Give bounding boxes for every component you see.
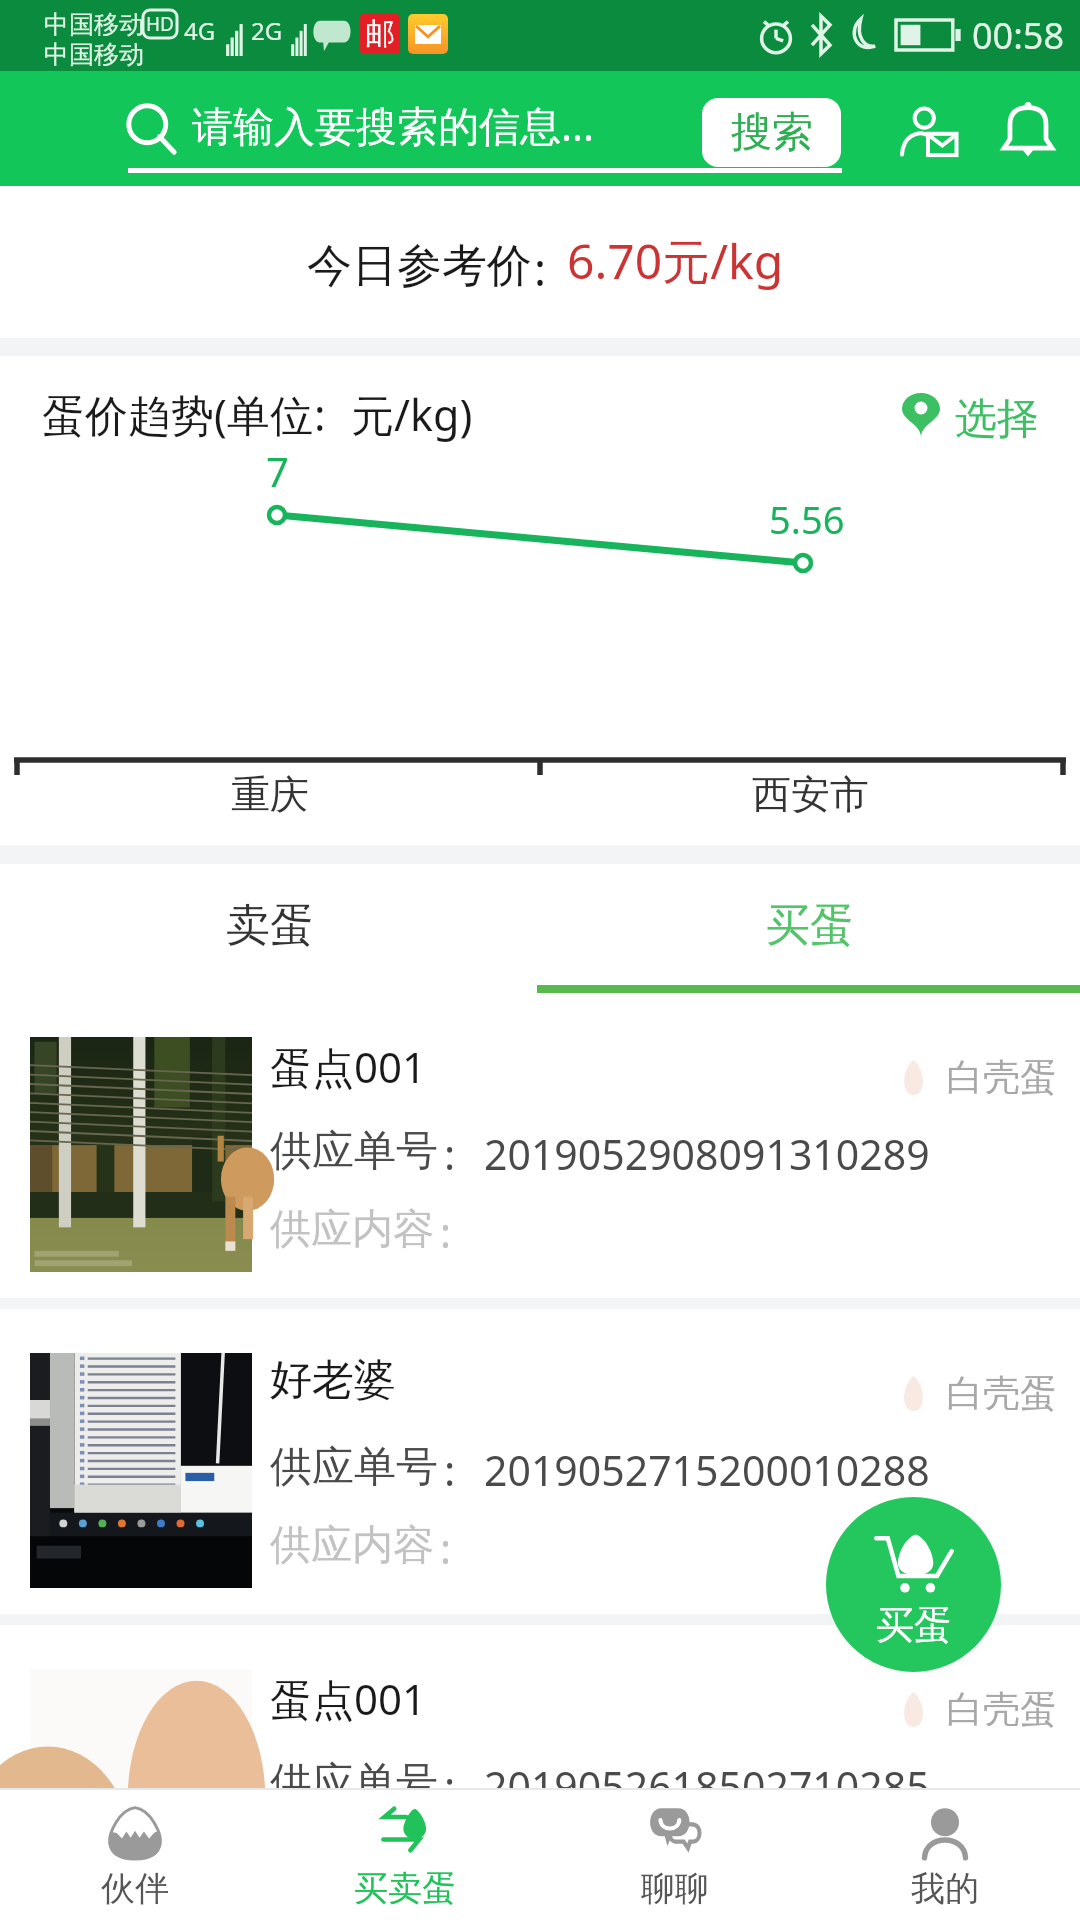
staticText: 邮 xyxy=(365,15,395,53)
staticText: 今日参考价 xyxy=(307,238,532,295)
staticText: 2019052618502710285 xyxy=(484,1758,930,1814)
staticText: : xyxy=(314,385,326,444)
staticText: 2019052908091310289 xyxy=(484,1126,930,1182)
staticText: 供应内容 xyxy=(270,1520,434,1572)
staticText: 00:58 xyxy=(972,11,1065,60)
staticText: 蛋点001 xyxy=(270,1038,427,1095)
staticText: : xyxy=(444,1441,456,1498)
staticText: 好老婆 xyxy=(270,1354,396,1407)
button[interactable]: 我的 xyxy=(810,1788,1080,1920)
button[interactable]: 选择 xyxy=(890,380,1050,444)
staticText: 供应单号 xyxy=(270,1125,438,1178)
staticText: 4G xyxy=(184,14,216,47)
staticText: 白壳蛋 xyxy=(946,1054,1057,1101)
button[interactable]: 伙伴 xyxy=(0,1788,270,1920)
staticText: 伙伴 xyxy=(101,1867,169,1910)
staticText: 卖蛋 xyxy=(226,898,314,953)
button[interactable]: 消息 xyxy=(888,91,968,171)
button[interactable]: 蛋点001 xyxy=(0,1625,1080,1920)
staticText: 买蛋 xyxy=(766,898,854,953)
button[interactable]: 买蛋 xyxy=(540,861,1080,990)
staticText: 买蛋 xyxy=(876,1601,952,1649)
staticText: HD xyxy=(146,11,174,37)
staticText: 选择 xyxy=(955,393,1039,446)
staticText: 供应内容 xyxy=(270,1204,434,1256)
staticText: 元/kg) xyxy=(351,385,473,444)
staticText: 中国移动 xyxy=(44,39,144,70)
button[interactable]: 卖蛋 xyxy=(0,861,540,990)
staticText: : xyxy=(440,1836,451,1892)
button[interactable]: 好老婆 xyxy=(0,1309,1080,1625)
staticText: : xyxy=(444,1125,456,1182)
staticText: 中国移动 xyxy=(44,9,144,40)
staticText: 供应单号 xyxy=(270,1757,438,1810)
staticText: 西安市 xyxy=(752,770,869,819)
staticText: : xyxy=(440,1204,451,1260)
button[interactable]: 搜索 xyxy=(702,98,841,167)
staticText: 7 xyxy=(266,444,289,498)
button[interactable]: 买蛋 xyxy=(826,1497,1001,1672)
staticText: 白壳蛋 xyxy=(946,1686,1057,1733)
staticText: 蛋点001 xyxy=(270,1670,427,1727)
staticText: 供应单号 xyxy=(270,1441,438,1494)
button[interactable]: 蛋点001 xyxy=(0,993,1080,1309)
button[interactable]: 通知 xyxy=(990,91,1066,167)
staticText: 蛋价趋势(单位 xyxy=(42,385,313,444)
staticText: 白壳蛋 xyxy=(946,1370,1057,1417)
staticText: 6.70元/kg xyxy=(567,228,784,294)
staticText: 5.56 xyxy=(769,493,845,545)
button[interactable]: 聊聊 xyxy=(540,1788,810,1920)
staticText: 2G xyxy=(251,14,283,47)
staticText: 请输入要搜索的信息... xyxy=(192,97,594,153)
button[interactable]: 买卖蛋 xyxy=(270,1788,540,1920)
button[interactable]: 西安市 xyxy=(540,753,1080,835)
staticText: 2019052715200010288 xyxy=(484,1442,930,1498)
staticText: : xyxy=(440,1520,451,1576)
staticText: 买卖蛋 xyxy=(354,1867,456,1910)
button[interactable]: 重庆 xyxy=(0,753,540,835)
staticText: 搜索 xyxy=(731,107,813,159)
staticText: 我的 xyxy=(911,1867,979,1910)
staticText: 供应内容 xyxy=(270,1836,434,1888)
staticText: : xyxy=(444,1757,456,1814)
staticText: : xyxy=(534,238,547,299)
staticText: 重庆 xyxy=(231,770,309,819)
staticText: 聊聊 xyxy=(641,1867,709,1910)
